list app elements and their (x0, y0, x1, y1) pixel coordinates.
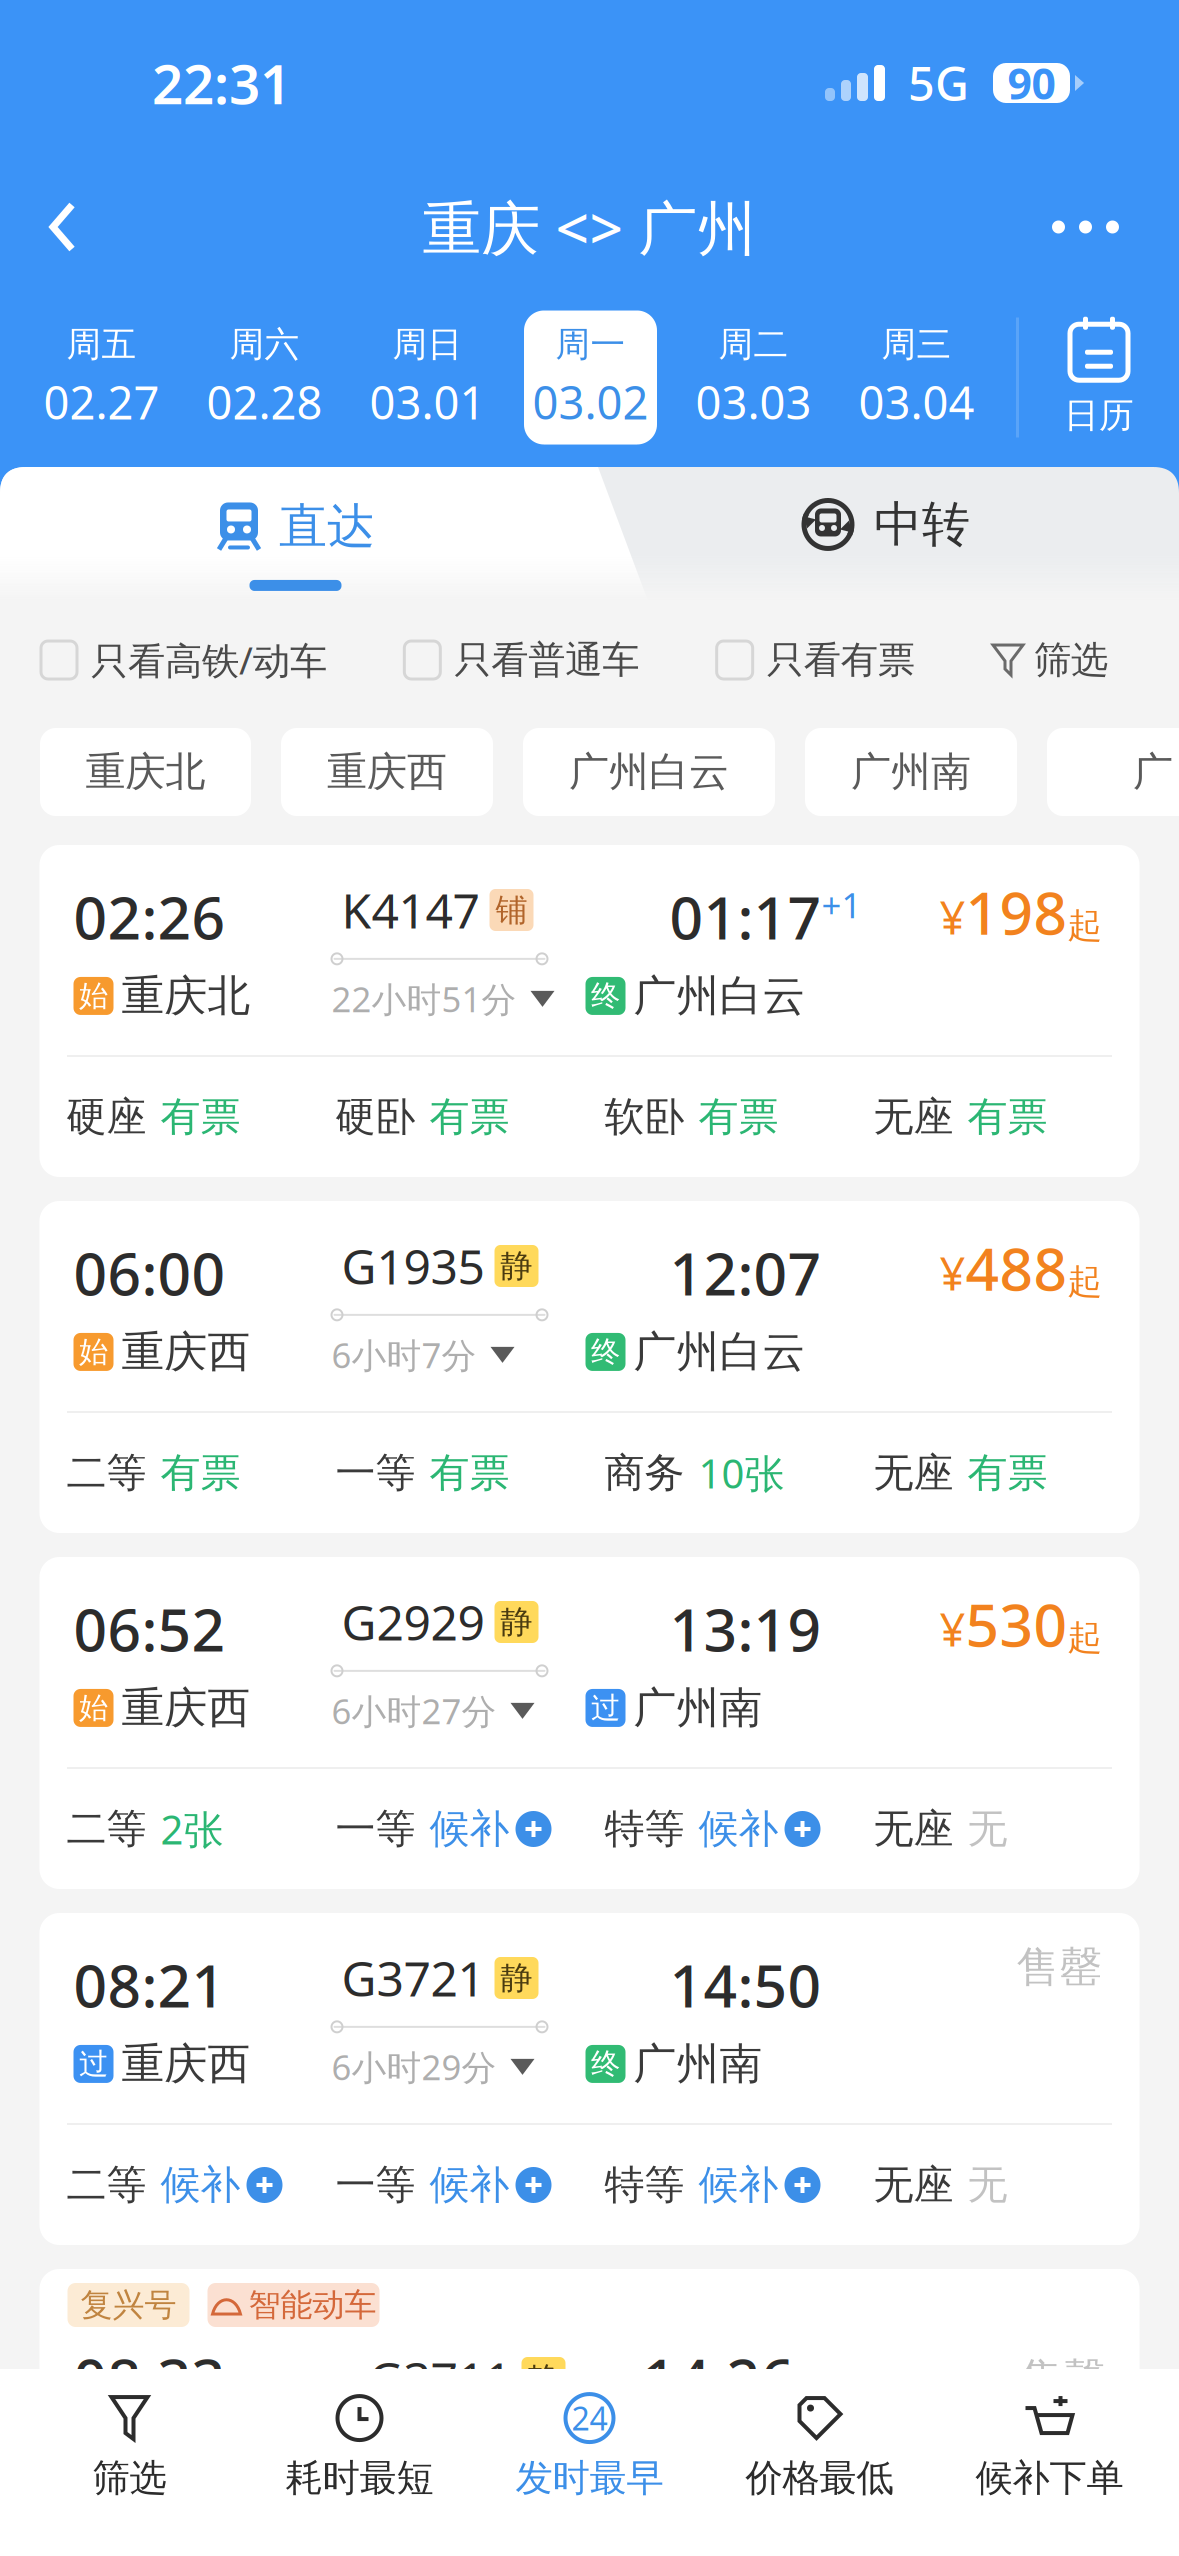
button[interactable]: 周日 (346, 288, 509, 467)
staticText: 02.28 (206, 372, 322, 432)
button[interactable]: 02:26 (39, 845, 1139, 1177)
button[interactable]: 广 (1047, 728, 1179, 816)
staticText: 铺 (495, 890, 527, 930)
button[interactable]: 广州南 (805, 728, 1017, 816)
button[interactable]: 只看有票 (717, 637, 915, 683)
staticText: 有票 (429, 1448, 509, 1497)
button[interactable]: 周一 (509, 288, 672, 467)
staticText: 只看高铁/动车 (91, 635, 327, 685)
staticText: 22小时51分 (331, 976, 516, 1022)
staticText: 周六 (229, 323, 299, 366)
staticText: 售罄 (1019, 2353, 1105, 2405)
staticText: G1935 (341, 1234, 484, 1298)
staticText: 03.02 (532, 372, 648, 432)
staticText: 6小时7分 (331, 1332, 476, 1378)
button[interactable]: 06:00 (39, 1201, 1139, 1533)
staticText: 13:19 (669, 1590, 821, 1668)
staticText: 一等 (335, 1448, 415, 1497)
staticText: 硬卧 (335, 1092, 415, 1141)
staticText: 有票 (967, 1448, 1047, 1497)
staticText: 02:26 (73, 878, 225, 956)
staticText: 广州白云 (569, 747, 729, 796)
button[interactable]: More options (1012, 182, 1179, 271)
staticText: 周一 (555, 323, 625, 366)
staticText: 无座 (873, 1804, 953, 1853)
staticText: 08:33 (73, 2340, 225, 2418)
button[interactable]: 周二 (672, 288, 835, 467)
staticText: 重庆西 (121, 1682, 250, 1734)
staticText: 广 (1133, 747, 1173, 796)
staticText: 无座 (873, 1092, 953, 1141)
staticText: 有票 (967, 1092, 1047, 1141)
staticText: 有票 (429, 1092, 509, 1141)
button[interactable]: 日历 (1019, 301, 1179, 453)
staticText: 488 (965, 1229, 1067, 1307)
staticText: 24 (571, 2397, 607, 2439)
staticText: 候补下单 (975, 2455, 1123, 2501)
staticText: 静 (500, 1246, 532, 1286)
staticText: 静 (500, 1958, 532, 1998)
button[interactable]: 08:21 (39, 1913, 1139, 2245)
staticText: 始 (79, 1334, 108, 1370)
staticText: 2张 (160, 1802, 223, 1855)
button[interactable]: 周三 (835, 288, 998, 467)
staticText: 广州白云 (633, 970, 805, 1022)
button[interactable]: 候补下单 (934, 2383, 1164, 2511)
staticText: 重庆北 (121, 970, 250, 1022)
staticText: 静 (527, 2359, 559, 2399)
button[interactable]: 直达 (0, 467, 591, 601)
button[interactable]: Back (0, 178, 120, 276)
staticText: 候补 (429, 2160, 509, 2209)
staticText: 软卧 (604, 1092, 684, 1141)
staticText: 过 (79, 2046, 108, 2082)
staticText: 智能动车 (248, 2285, 376, 2325)
button[interactable]: 06:52 (39, 1557, 1139, 1889)
button[interactable]: 耗时最短 (244, 2383, 474, 2511)
staticText: 始 (79, 1690, 108, 1726)
staticText: 无 (967, 2160, 1007, 2209)
staticText: 售罄 (1016, 1941, 1102, 1993)
button[interactable]: 广州白云 (523, 728, 775, 816)
staticText: 有票 (698, 1092, 778, 1141)
staticText: 01:17 (669, 878, 821, 956)
button[interactable]: 中转 (591, 467, 1179, 601)
staticText: 复兴号 (80, 2285, 176, 2325)
staticText: G3721 (341, 1946, 484, 2010)
staticText: 终 (591, 1334, 620, 1370)
staticText: 周日 (392, 323, 462, 366)
staticText: G3711 (368, 2347, 511, 2411)
staticText: 无座 (873, 1448, 953, 1497)
button[interactable]: 周五 (20, 288, 183, 467)
staticText: 06:00 (73, 1234, 225, 1312)
button[interactable]: 只看普通车 (404, 637, 639, 683)
button[interactable]: 价格最低 (704, 2383, 934, 2511)
staticText: +1 (821, 882, 861, 928)
staticText: 5G (908, 52, 969, 114)
staticText: ¥ (939, 1243, 965, 1303)
staticText: 无座 (873, 2160, 953, 2209)
staticText: ¥ (939, 1599, 965, 1659)
staticText: 过 (591, 1690, 620, 1726)
button[interactable]: 重庆北 (40, 728, 251, 816)
staticText: 起 (1067, 1616, 1102, 1659)
staticText: 二等 (66, 2160, 146, 2209)
button[interactable]: 周六 (183, 288, 346, 467)
staticText: 终 (591, 2046, 620, 2082)
staticText: 二等 (66, 1448, 146, 1497)
staticText: 只看有票 (767, 637, 915, 683)
staticText: 候补 (698, 1804, 778, 1853)
button[interactable]: 24 (474, 2383, 704, 2511)
staticText: 广州南 (633, 2038, 762, 2090)
staticText: 周三 (881, 323, 951, 366)
button[interactable]: 筛选 (992, 637, 1108, 683)
staticText: 02.27 (43, 372, 159, 432)
button[interactable]: 只看高铁/动车 (41, 635, 327, 685)
staticText: 6小时27分 (331, 1688, 496, 1734)
staticText: 14:26 (642, 2340, 794, 2418)
staticText: 广州白云 (633, 1326, 805, 1378)
button[interactable]: 筛选 (14, 2383, 244, 2511)
button[interactable]: 重庆西 (281, 728, 493, 816)
staticText: 价格最低 (745, 2455, 893, 2501)
staticText: 22:31 (152, 47, 291, 119)
staticText: 广州南 (633, 1682, 762, 1734)
